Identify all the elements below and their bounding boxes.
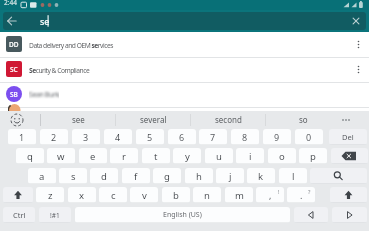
button[interactable]: g <box>153 168 181 184</box>
staticText: k <box>258 170 264 183</box>
button[interactable]: se <box>3 12 366 30</box>
staticText: 8 <box>242 131 248 143</box>
button[interactable]: z <box>36 187 64 203</box>
staticText: English (US) <box>163 210 202 220</box>
button[interactable]: i <box>236 148 264 164</box>
button[interactable]: 1 <box>8 129 36 145</box>
button[interactable]: 7 <box>199 129 227 145</box>
button[interactable]: 2 <box>40 129 68 145</box>
button[interactable]: p <box>299 148 327 164</box>
button[interactable]: d <box>90 168 118 184</box>
button[interactable]: Del <box>329 129 367 145</box>
staticText: , <box>269 189 272 201</box>
staticText: 5 <box>147 131 153 143</box>
staticText: se <box>40 15 50 27</box>
button[interactable] <box>331 148 368 164</box>
button[interactable]: v <box>130 187 158 203</box>
staticText: d <box>101 170 107 183</box>
staticText: 2 <box>51 131 57 143</box>
button[interactable]: b <box>162 187 190 203</box>
staticText: m <box>235 189 244 202</box>
staticText: several <box>140 114 167 125</box>
button[interactable] <box>332 207 367 223</box>
staticText: . <box>300 189 303 201</box>
button[interactable]: w <box>47 148 75 164</box>
button[interactable]: Ctrl <box>3 207 35 223</box>
staticText: so <box>299 114 308 125</box>
button[interactable] <box>310 168 367 184</box>
staticText: i <box>249 150 252 163</box>
button[interactable]: . <box>287 187 315 203</box>
button[interactable]: second <box>191 111 266 128</box>
button[interactable] <box>0 82 369 107</box>
staticText: a <box>39 170 45 183</box>
button[interactable] <box>330 187 367 203</box>
button[interactable] <box>294 207 328 223</box>
button[interactable]: 6 <box>168 129 196 145</box>
staticText: y <box>185 150 190 163</box>
staticText: 9 <box>274 131 280 143</box>
staticText: r <box>122 150 126 163</box>
staticText: see <box>72 114 85 125</box>
staticText: SC <box>10 65 18 74</box>
staticText: !#1 <box>50 211 60 220</box>
staticText: h <box>196 170 202 183</box>
button[interactable]: y <box>173 148 201 164</box>
button[interactable]: e <box>79 148 107 164</box>
staticText: l <box>292 170 295 183</box>
staticText: g <box>164 170 170 183</box>
staticText: Security & Compliance <box>29 66 90 75</box>
button[interactable]: x <box>68 187 96 203</box>
button[interactable]: 0 <box>295 129 323 145</box>
staticText: 4 <box>115 131 121 143</box>
staticText: Del <box>342 132 354 142</box>
button[interactable]: 5 <box>136 129 164 145</box>
button[interactable]: c <box>99 187 127 203</box>
staticText: j <box>229 170 232 183</box>
button[interactable]: 9 <box>263 129 291 145</box>
button[interactable]: 4 <box>104 129 132 145</box>
button[interactable]: j <box>216 168 244 184</box>
staticText: e <box>90 150 96 163</box>
button[interactable]: r <box>110 148 138 164</box>
staticText: 6 <box>179 131 185 143</box>
button[interactable]: l <box>279 168 307 184</box>
button[interactable]: h <box>185 168 213 184</box>
staticText: SB <box>10 90 18 99</box>
button[interactable]: English (US) <box>75 207 290 223</box>
staticText: c <box>111 189 116 202</box>
button[interactable]: o <box>268 148 296 164</box>
button[interactable]: !#1 <box>39 207 71 223</box>
button[interactable]: , <box>256 187 284 203</box>
button[interactable]: m <box>225 187 253 203</box>
staticText: Data delivery and OEM services <box>29 41 113 50</box>
staticText: Sean Burk <box>29 90 59 100</box>
staticText: second <box>215 114 242 125</box>
staticText: s <box>71 170 76 183</box>
button[interactable] <box>3 187 33 203</box>
button[interactable] <box>0 57 369 82</box>
staticText: DD <box>9 40 19 49</box>
button[interactable]: several <box>116 111 191 128</box>
staticText: o <box>279 150 285 163</box>
button[interactable]: f <box>122 168 150 184</box>
button[interactable]: see <box>41 111 116 128</box>
button[interactable]: a <box>28 168 56 184</box>
staticText: z <box>48 189 53 202</box>
staticText: f <box>134 170 138 183</box>
button[interactable]: so <box>266 111 341 128</box>
staticText: 7 <box>210 131 216 143</box>
staticText: ! <box>278 188 280 195</box>
button[interactable]: 8 <box>231 129 259 145</box>
button[interactable]: u <box>205 148 233 164</box>
button[interactable]: n <box>193 187 221 203</box>
button[interactable]: 3 <box>72 129 100 145</box>
button[interactable] <box>0 32 369 57</box>
staticText: 3 <box>83 131 89 143</box>
button[interactable]: t <box>142 148 170 164</box>
button[interactable]: k <box>247 168 275 184</box>
button[interactable]: s <box>59 168 87 184</box>
button[interactable]: q <box>16 148 44 164</box>
staticText: w <box>57 150 65 163</box>
staticText: u <box>216 150 222 163</box>
